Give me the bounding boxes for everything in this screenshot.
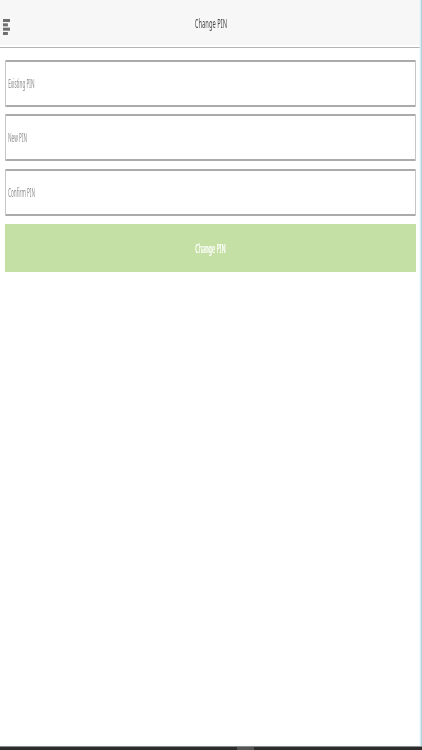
button[interactable]: Existing PIN [5,60,416,107]
staticText: Change PIN [195,239,226,257]
button[interactable]: New PIN [5,114,416,161]
staticText: Confirm PIN [8,183,35,201]
button[interactable]: Open navigation menu [0,3,16,43]
button[interactable]: Change PIN [5,224,416,272]
staticText: New PIN [8,128,27,146]
staticText: Change PIN [195,14,227,32]
button[interactable]: Confirm PIN [5,169,416,216]
staticText: Existing PIN [8,74,35,92]
